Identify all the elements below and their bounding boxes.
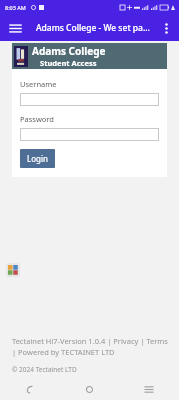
- button[interactable]: Recent apps: [119, 378, 179, 400]
- button[interactable]: Open navigation menu: [5, 18, 25, 38]
- button[interactable]: Tectainet Hi7-Version 1.0.4 | Privacy | …: [12, 336, 168, 346]
- button[interactable]: More options: [156, 18, 176, 38]
- staticText: Student Access: [40, 58, 97, 68]
- staticText: Password: [20, 114, 54, 124]
- staticText: Login: [27, 153, 48, 164]
- button[interactable]: [20, 93, 159, 106]
- staticText: © 2024 Tectainet LTD: [12, 365, 77, 374]
- button[interactable]: | Powered by TECTAINET LTD: [12, 347, 115, 357]
- staticText: Adams College - We set pa...: [36, 22, 150, 34]
- button[interactable]: Back: [0, 378, 59, 400]
- button[interactable]: Login: [20, 149, 55, 168]
- staticText: Adams College: [32, 44, 106, 58]
- button[interactable]: Open Tectainet app: [6, 263, 20, 277]
- staticText: Username: [20, 79, 57, 89]
- button[interactable]: [20, 128, 159, 141]
- button[interactable]: Home: [59, 378, 119, 400]
- staticText: 8:03 AM: [5, 4, 26, 11]
